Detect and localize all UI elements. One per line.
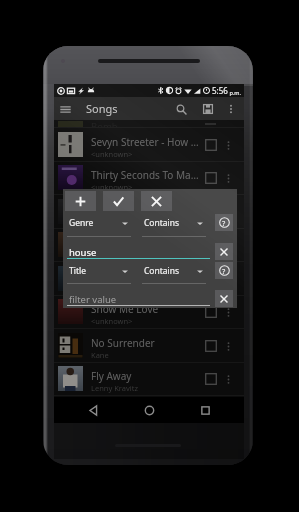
staticText: Lenny Kravitz: [91, 383, 138, 393]
staticText: Bomb: [91, 120, 118, 128]
button[interactable]: Show Me Love: [54, 295, 244, 329]
button[interactable]: Help: [215, 262, 233, 279]
button[interactable]: filter value: [67, 291, 210, 307]
staticText: Fly Away: [91, 369, 132, 383]
button[interactable]: No Surrender: [54, 329, 244, 363]
button[interactable]: Add filter: [65, 191, 96, 211]
staticText: No Surrender: [91, 336, 155, 350]
button[interactable]: Help: [215, 214, 233, 231]
button[interactable]: Select song: [202, 136, 220, 154]
button[interactable]: More options: [221, 99, 241, 119]
staticText: Summer Jam: [91, 235, 152, 249]
button[interactable]: Lose Yourself: [54, 195, 244, 229]
button[interactable]: Select song: [202, 236, 220, 254]
staticText: <unknown>: [91, 216, 133, 226]
button[interactable]: house: [67, 244, 210, 260]
button[interactable]: Select song: [202, 203, 220, 221]
staticText: Genre: [69, 217, 94, 229]
button[interactable]: Fly Away: [54, 362, 244, 396]
button[interactable]: Open navigation drawer: [54, 98, 76, 120]
staticText: Thirty Seconds To Mars -…: [91, 168, 199, 182]
button[interactable]: Contains: [142, 215, 206, 238]
staticText: 5:56: [212, 85, 228, 96]
button[interactable]: Select song: [202, 370, 220, 388]
button[interactable]: Thirty Seconds To Mars -…: [54, 161, 244, 195]
staticText: Title: [69, 265, 86, 277]
staticText: <unknown>: [91, 249, 133, 259]
button[interactable]: Song options: [221, 372, 235, 386]
button[interactable]: Sevyn Streeter - How Ba…: [54, 128, 244, 162]
button[interactable]: Song options: [221, 339, 235, 353]
staticText: Kane: [91, 350, 109, 360]
button[interactable]: Select song: [202, 169, 220, 187]
button[interactable]: Contains: [142, 263, 206, 285]
staticText: Hotel California: [91, 269, 164, 283]
button[interactable]: Home: [132, 397, 166, 423]
staticText: p.m.: [228, 89, 241, 96]
staticText: <unknown>: [91, 149, 133, 159]
staticText: filter value: [69, 293, 117, 306]
button[interactable]: Song options: [221, 205, 235, 219]
staticText: Show Me Love: [91, 302, 159, 316]
staticText: <unknown>: [91, 182, 133, 192]
button[interactable]: Song options: [221, 238, 235, 252]
staticText: Contains: [144, 217, 180, 229]
button[interactable]: Select song: [202, 303, 220, 321]
button[interactable]: Song options: [221, 272, 235, 286]
button[interactable]: Select song: [202, 270, 220, 288]
button[interactable]: Back: [76, 397, 110, 423]
staticText: <unknown>: [91, 283, 133, 293]
button[interactable]: Song options: [221, 171, 235, 185]
button[interactable]: Summer Jam: [54, 228, 244, 262]
button[interactable]: Clear value: [215, 243, 233, 260]
button[interactable]: Song options: [221, 305, 235, 319]
staticText: Songs: [86, 101, 118, 116]
button[interactable]: Search: [170, 98, 192, 120]
button[interactable]: Save: [197, 98, 219, 120]
button[interactable]: Title: [67, 263, 131, 285]
staticText: ?: [222, 218, 226, 228]
staticText: <unknown>: [91, 316, 133, 326]
button[interactable]: Song options: [221, 138, 235, 152]
button[interactable]: Apply filter: [103, 191, 134, 211]
staticText: Lose Yourself: [91, 202, 154, 216]
staticText: Contains: [144, 265, 180, 277]
staticText: house: [69, 246, 97, 259]
staticText: ?: [222, 266, 226, 276]
button[interactable]: Clear value: [215, 290, 233, 307]
button[interactable]: Recent apps: [188, 397, 222, 423]
button[interactable]: Close filter: [141, 191, 172, 211]
staticText: Sevyn Streeter - How Ba…: [91, 135, 199, 149]
button[interactable]: Select song: [202, 337, 220, 355]
button[interactable]: Genre: [67, 215, 131, 238]
button[interactable]: Hotel California: [54, 262, 244, 296]
